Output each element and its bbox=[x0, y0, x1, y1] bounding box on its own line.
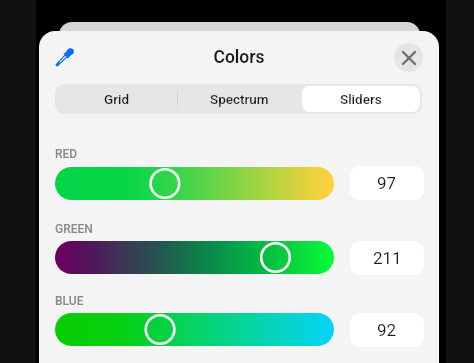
staticText: 211 bbox=[373, 248, 402, 268]
button[interactable]: 92 bbox=[350, 313, 424, 347]
button[interactable]: Pick colour with eyedropper bbox=[48, 40, 82, 74]
staticText: RED bbox=[55, 147, 78, 161]
staticText: 92 bbox=[377, 320, 397, 340]
button[interactable]: RED slider, 97 bbox=[55, 167, 334, 200]
button[interactable]: Spectrum bbox=[180, 86, 298, 112]
staticText: 97 bbox=[377, 173, 397, 193]
button[interactable]: GREEN slider, 211 bbox=[55, 241, 334, 274]
staticText: Grid bbox=[104, 91, 130, 107]
button[interactable]: BLUE slider, 92 bbox=[55, 313, 334, 346]
staticText: Sliders bbox=[340, 91, 382, 107]
staticText: Spectrum bbox=[210, 91, 269, 107]
staticText: Colors bbox=[39, 47, 439, 68]
button[interactable]: 211 bbox=[350, 241, 424, 275]
button[interactable]: Sliders bbox=[302, 86, 420, 112]
staticText: BLUE bbox=[55, 294, 84, 308]
button[interactable]: Close bbox=[394, 43, 423, 72]
staticText: GREEN bbox=[55, 222, 93, 236]
button[interactable]: 97 bbox=[350, 166, 424, 200]
button[interactable]: Grid bbox=[57, 86, 176, 112]
